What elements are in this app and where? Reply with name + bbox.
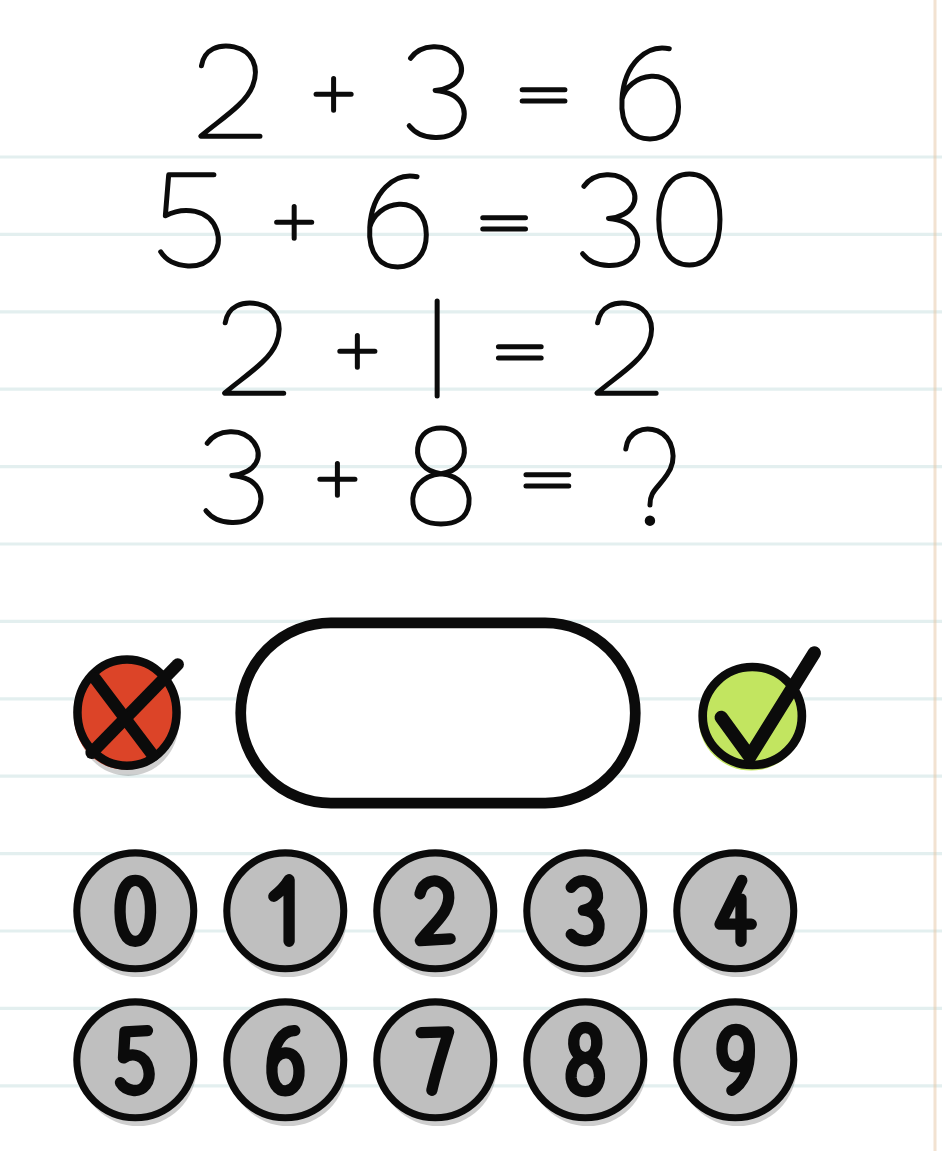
button[interactable]: Answer field [230,610,646,816]
button[interactable] [670,995,806,1133]
button[interactable] [370,846,506,984]
button[interactable] [220,995,356,1133]
button[interactable] [670,846,806,984]
button[interactable] [520,995,656,1133]
button[interactable]: Submit answer [694,646,818,786]
button[interactable] [520,846,656,984]
button[interactable] [70,995,206,1133]
button[interactable]: Clear answer [68,653,186,781]
button[interactable] [370,995,506,1133]
button[interactable] [70,846,206,984]
button[interactable] [220,846,356,984]
